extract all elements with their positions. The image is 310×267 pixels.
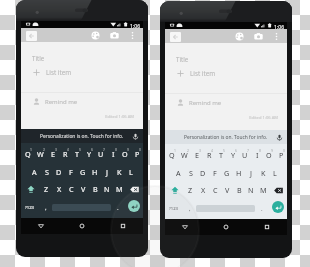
staticText: List item [190,69,216,78]
button[interactable]: Personalization is on. Touch for info. [165,130,287,144]
button[interactable]: 7 [95,146,107,162]
button[interactable]: Shift [21,181,40,197]
button[interactable]: K [257,165,269,181]
button[interactable]: Colour [234,31,245,42]
staticText: G [80,167,86,177]
staticText: ?123 [169,206,179,212]
button[interactable]: Home [205,219,246,235]
button[interactable]: ?123 [22,200,38,216]
button[interactable]: J [101,164,113,180]
staticText: Q [169,150,175,160]
button[interactable]: 3 [191,147,203,163]
button[interactable]: More options [271,31,282,42]
button[interactable]: D [197,165,209,181]
button[interactable]: Remind me [21,96,143,107]
button[interactable]: H [233,165,245,181]
staticText: ?123 [25,205,35,211]
button[interactable]: 9 [263,147,275,163]
button[interactable]: . [112,200,123,216]
button[interactable]: , [184,201,196,217]
button[interactable]: 0 [131,146,143,162]
button[interactable]: 4 [59,146,71,162]
button[interactable]: F [65,164,77,180]
button[interactable]: 2 [178,147,191,163]
button[interactable]: 9 [119,146,131,162]
button[interactable]: Shift [165,182,184,198]
button[interactable]: 5 [215,147,227,163]
button[interactable]: Enter [128,200,140,212]
button[interactable]: Personalization is on. Touch for info. [21,129,143,143]
button[interactable]: Z [40,181,53,197]
button[interactable]: Z [184,182,197,198]
button[interactable]: J [245,165,257,181]
button[interactable]: M [113,181,125,197]
staticText: V [225,185,230,195]
button[interactable]: G [77,164,89,180]
button[interactable]: More options [127,30,138,41]
button[interactable]: Remind me [165,97,287,108]
staticText: Q [25,149,31,159]
button[interactable]: S [41,164,53,180]
button[interactable]: 7 [239,147,251,163]
button[interactable]: Back [26,31,37,41]
button[interactable]: Backspace [125,181,143,197]
button[interactable]: Camera [109,30,120,41]
staticText: O [122,149,128,159]
button[interactable]: . [256,201,267,217]
staticText: S [189,168,193,178]
button[interactable]: A [28,164,41,180]
button[interactable]: L [269,165,281,181]
button[interactable]: A [172,165,185,181]
button[interactable]: B [233,182,245,198]
button[interactable]: 4 [203,147,215,163]
button[interactable]: C [209,182,221,198]
button[interactable]: 0 [275,147,287,163]
staticText: J [106,167,108,177]
button[interactable]: List item [21,67,143,78]
button[interactable]: 1 [165,147,178,163]
staticText: Personalization is on. Touch for info. [184,134,268,141]
button[interactable]: Recent apps [246,219,287,235]
button[interactable]: Enter [272,201,284,213]
button[interactable]: V [221,182,233,198]
button[interactable]: N [245,182,257,198]
button[interactable]: 6 [83,146,95,162]
staticText: D [200,168,206,178]
button[interactable]: 2 [34,146,47,162]
button[interactable]: K [113,164,125,180]
staticText: W [181,150,188,160]
button[interactable]: G [221,165,233,181]
button[interactable]: 3 [47,146,59,162]
button[interactable]: N [101,181,113,197]
button[interactable]: H [89,164,101,180]
button[interactable]: 1 [21,146,34,162]
button[interactable]: B [89,181,101,197]
button[interactable]: Backspace [269,182,287,198]
button[interactable]: Back [170,32,181,42]
button[interactable]: S [185,165,197,181]
staticText: 5 [79,147,81,152]
button[interactable]: D [53,164,65,180]
button[interactable]: C [65,181,77,197]
button[interactable]: L [125,164,137,180]
button[interactable]: 8 [251,147,263,163]
button[interactable]: 6 [227,147,239,163]
button[interactable]: , [40,200,52,216]
button[interactable]: Camera [253,31,264,42]
button[interactable]: X [53,181,65,197]
button[interactable]: 8 [107,146,119,162]
button[interactable]: Home [61,218,102,234]
button[interactable]: X [197,182,209,198]
button[interactable]: Back [21,218,61,234]
button[interactable]: M [257,182,269,198]
button[interactable]: Colour [90,30,101,41]
button[interactable]: F [209,165,221,181]
button[interactable]: Recent apps [102,218,143,234]
button[interactable]: 5 [71,146,83,162]
button[interactable]: List item [165,68,287,79]
button[interactable]: V [77,181,89,197]
button[interactable]: ?123 [166,201,182,217]
button[interactable]: Back [165,219,205,235]
